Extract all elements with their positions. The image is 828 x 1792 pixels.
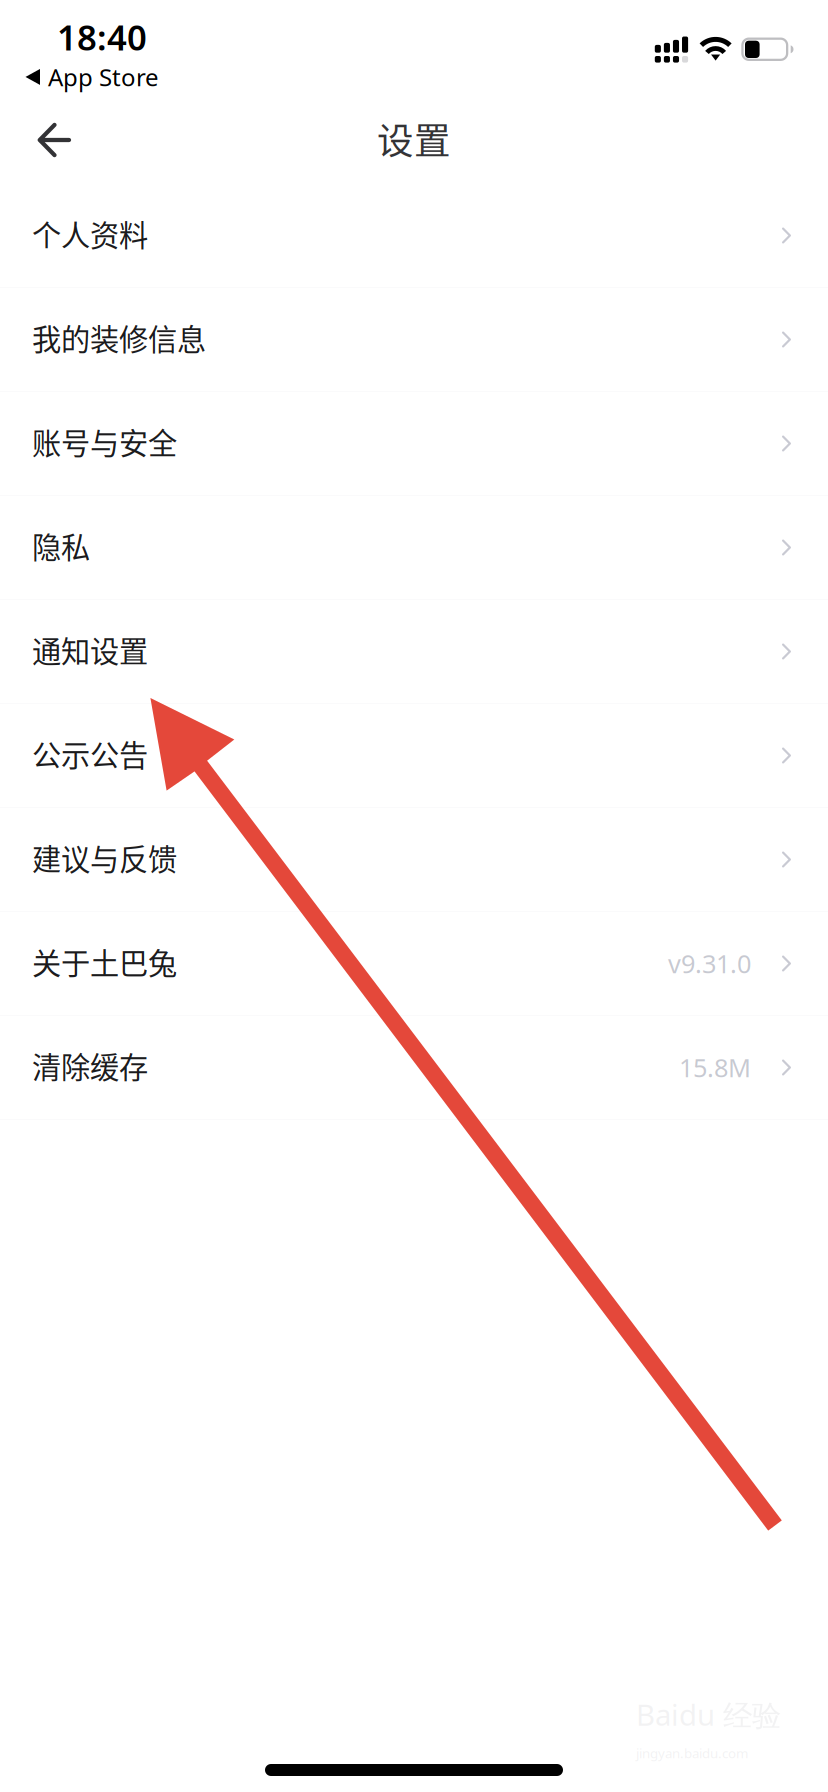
button[interactable]: 公示公告 bbox=[0, 704, 828, 808]
staticText: v9.31.0 bbox=[668, 947, 751, 980]
button[interactable]: 个人资料 bbox=[0, 184, 828, 288]
button[interactable]: 清除缓存 bbox=[0, 1016, 828, 1120]
staticText: 通知设置 bbox=[32, 628, 148, 671]
staticText: 关于土巴兔 bbox=[32, 940, 177, 983]
staticText: 18:40 bbox=[57, 14, 147, 60]
staticText: Baidu 经验 bbox=[636, 1695, 781, 1734]
staticText: 个人资料 bbox=[32, 212, 148, 255]
button[interactable]: 建议与反馈 bbox=[0, 808, 828, 912]
button[interactable]: 关于土巴兔 bbox=[0, 912, 828, 1016]
staticText: 隐私 bbox=[32, 524, 90, 567]
button[interactable]: Back bbox=[18, 104, 90, 176]
button[interactable]: 通知设置 bbox=[0, 600, 828, 704]
button[interactable]: 我的装修信息 bbox=[0, 288, 828, 392]
staticText: 15.8M bbox=[679, 1051, 751, 1084]
button[interactable]: 账号与安全 bbox=[0, 392, 828, 496]
button[interactable]: 隐私 bbox=[0, 496, 828, 600]
staticText: 账号与安全 bbox=[32, 420, 177, 463]
staticText: App Store bbox=[48, 61, 159, 93]
staticText: 设置 bbox=[377, 112, 451, 165]
staticText: 建议与反馈 bbox=[32, 836, 177, 879]
staticText: 清除缓存 bbox=[32, 1044, 148, 1087]
button[interactable]: App Store bbox=[24, 61, 159, 93]
staticText: 公示公告 bbox=[32, 732, 148, 775]
staticText: jingyan.baidu.com bbox=[636, 1744, 748, 1762]
staticText: 我的装修信息 bbox=[32, 316, 206, 359]
